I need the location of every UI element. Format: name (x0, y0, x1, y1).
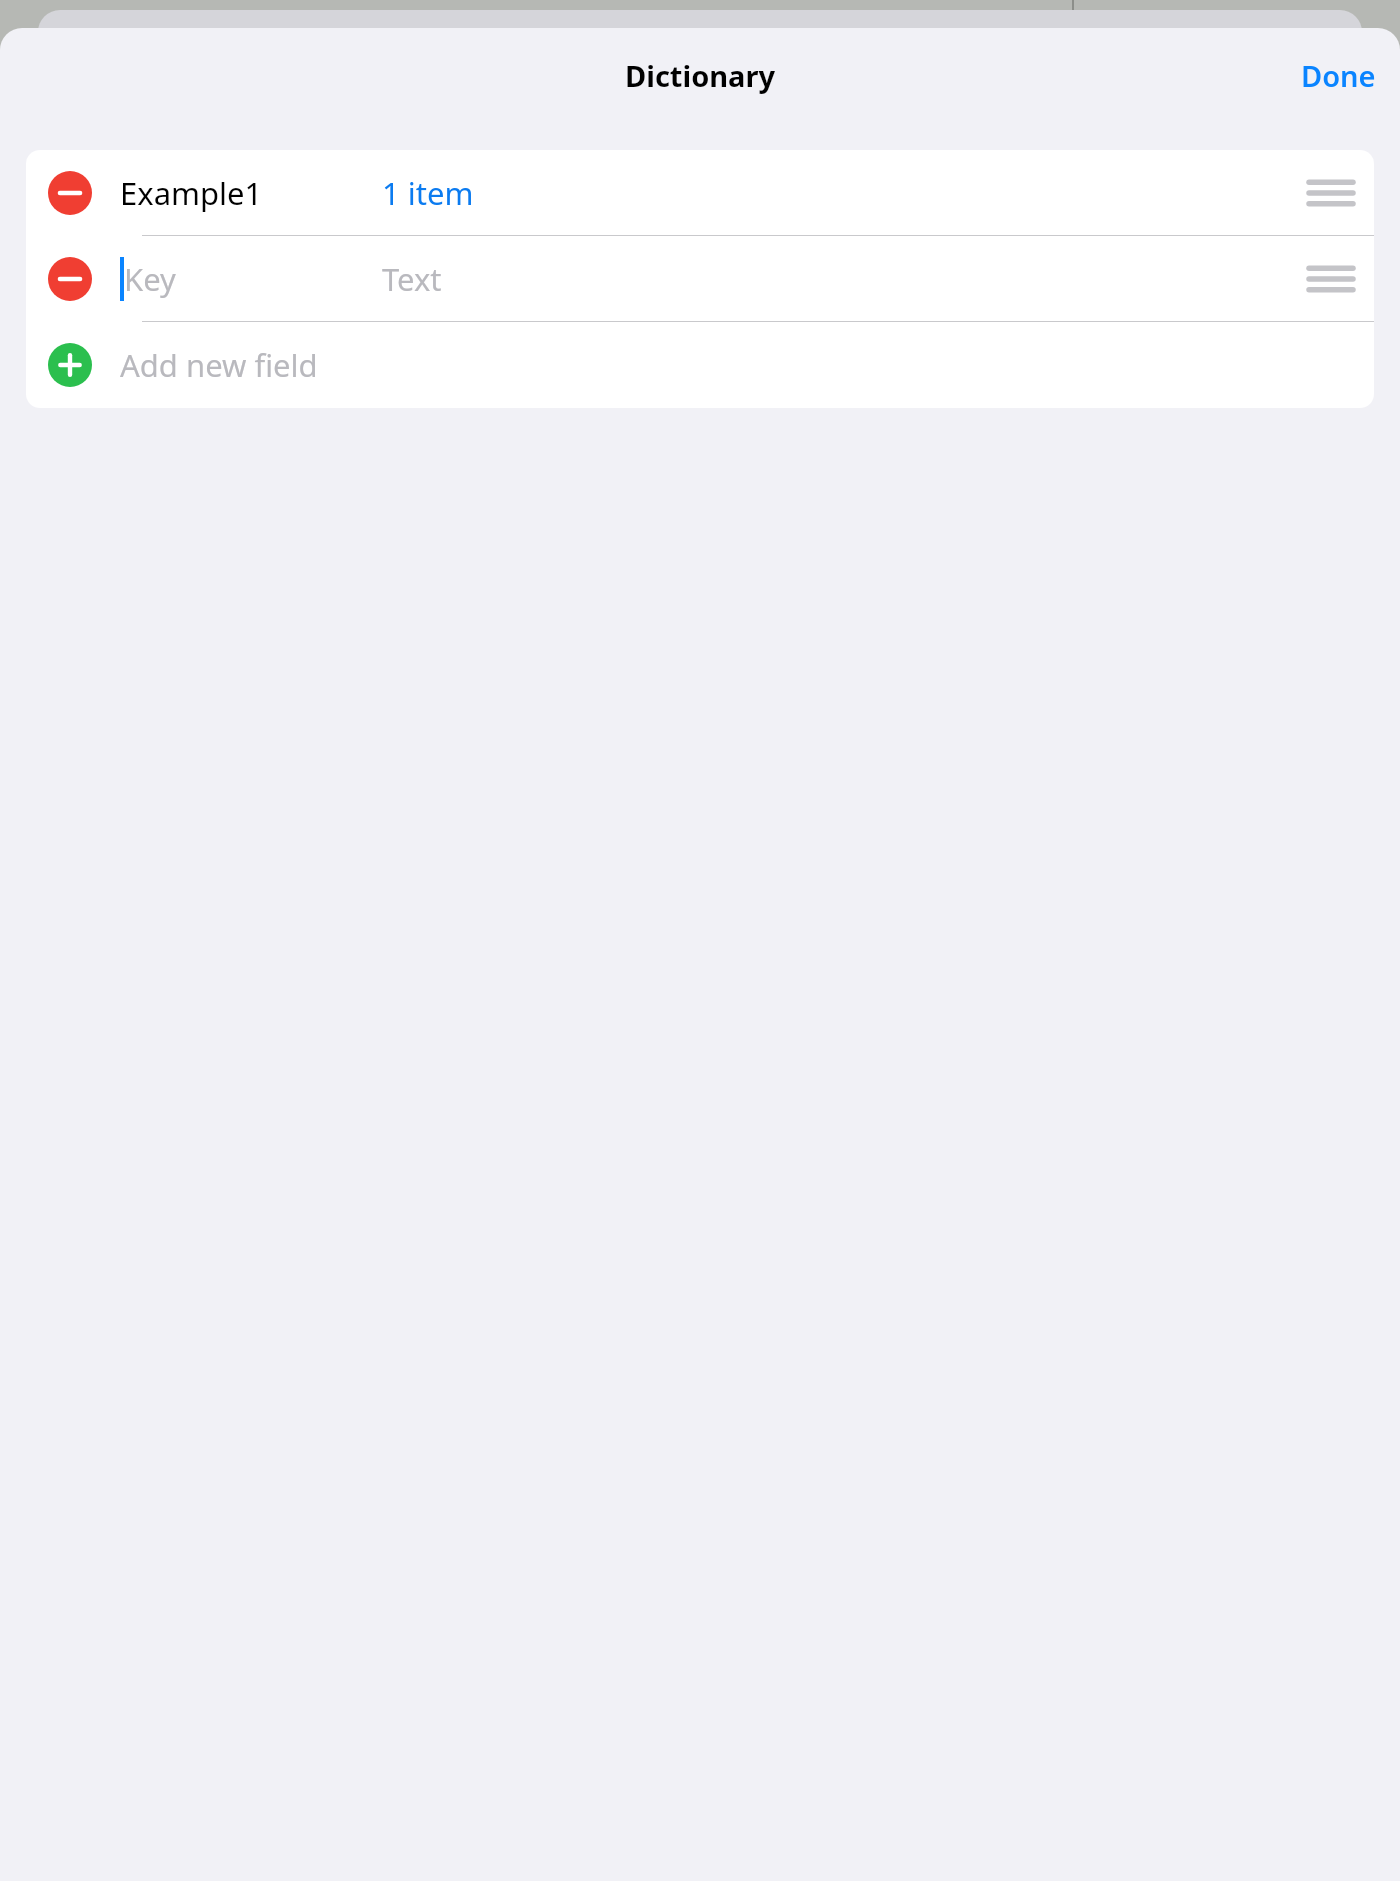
staticText: Add new field (120, 344, 318, 386)
staticText: 1 item (382, 172, 474, 214)
button[interactable]: Reorder (1288, 150, 1374, 236)
button[interactable]: Add new field (26, 322, 1374, 408)
staticText: Dictionary (625, 56, 775, 95)
staticText: Text (382, 258, 442, 300)
staticText: Done (1301, 56, 1376, 95)
button[interactable]: Remove field (26, 150, 1374, 236)
staticText: Key (124, 258, 176, 300)
button[interactable]: Remove field (46, 169, 94, 217)
button[interactable]: Remove field (46, 255, 94, 303)
staticText: Example1 (120, 172, 263, 214)
button[interactable]: Remove field (26, 236, 1374, 322)
button[interactable]: Done (1277, 48, 1400, 103)
button[interactable]: Reorder (1288, 236, 1374, 322)
